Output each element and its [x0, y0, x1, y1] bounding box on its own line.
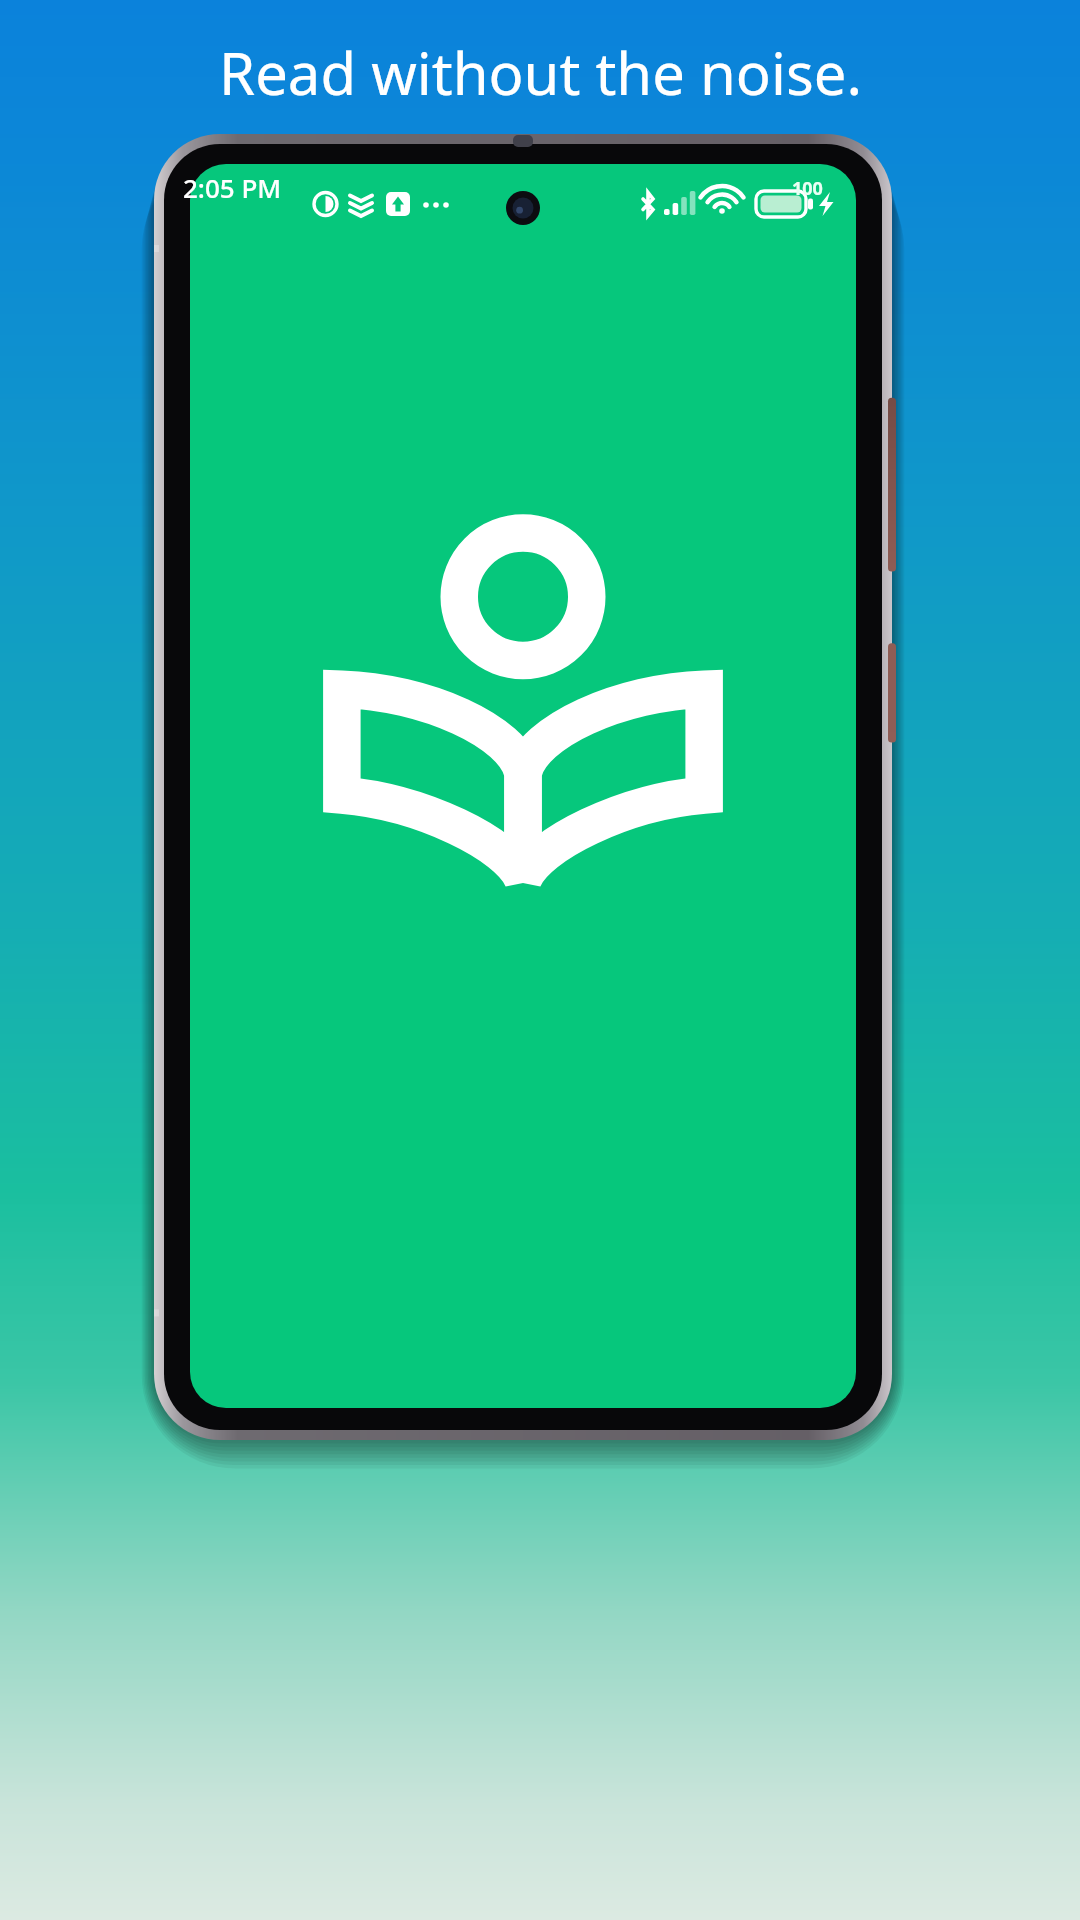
- staticText: 100: [792, 176, 823, 201]
- staticText: Read without the noise.: [219, 33, 862, 112]
- staticText: 2:05 PM: [183, 170, 282, 205]
- button[interactable]: Moon Reader splash: [190, 164, 856, 1412]
